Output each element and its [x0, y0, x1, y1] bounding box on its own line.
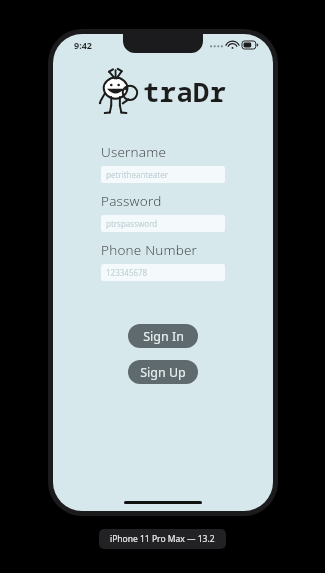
staticText: Password — [101, 192, 162, 210]
staticText: 123345678 — [106, 267, 148, 278]
staticText: Sign In — [143, 328, 184, 345]
staticText: Phone Number — [101, 241, 198, 259]
button[interactable]: Sign Up — [128, 360, 198, 384]
button[interactable]: ptrspassword — [101, 215, 225, 232]
button[interactable]: 123345678 — [101, 264, 225, 281]
staticText: traDr — [143, 73, 227, 110]
other: traDr logo — [99, 67, 135, 115]
staticText: petritheanteater — [106, 169, 169, 180]
staticText: Sign Up — [140, 364, 186, 381]
staticText: 9:42 — [74, 39, 92, 51]
button[interactable]: petritheanteater — [101, 166, 225, 183]
staticText: ptrspassword — [106, 218, 158, 229]
staticText: Username — [101, 143, 167, 161]
staticText: iPhone 11 Pro Max — 13.2 — [110, 533, 215, 545]
button[interactable]: Sign In — [128, 324, 198, 348]
